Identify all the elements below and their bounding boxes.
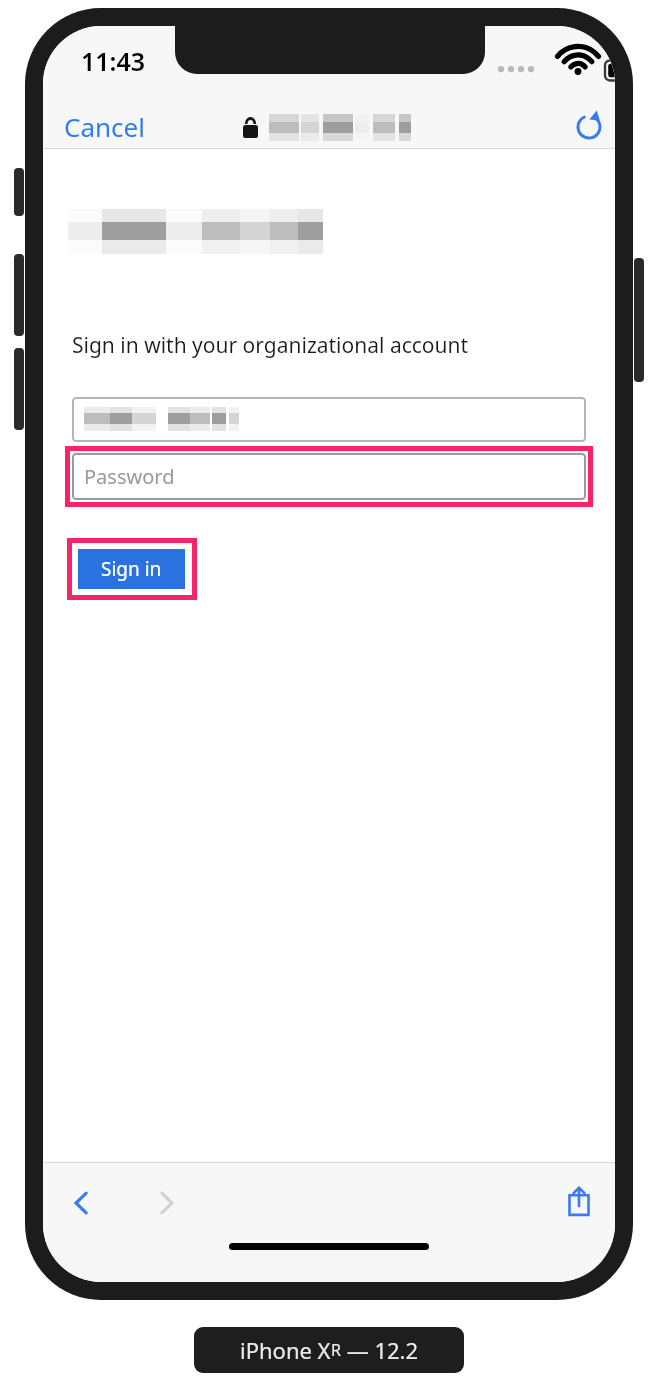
button[interactable]: Back [55,1176,109,1230]
staticText: Sign in with your organizational account [72,331,469,360]
button[interactable]: Share [551,1174,607,1230]
staticText: — 12.2 [341,1335,419,1365]
staticText: iPhone X [240,1335,331,1365]
button[interactable]: Sign in [78,549,185,589]
staticText: Password [84,463,175,490]
staticText: Sign in [101,556,162,582]
staticText: Cancel [64,109,145,144]
button[interactable]: Forward [139,1176,193,1230]
button[interactable]: Password [72,453,586,500]
staticText: 11:43 [81,44,146,78]
staticText: R [331,1339,341,1361]
button[interactable]: Reload [567,104,611,148]
button[interactable] [72,397,586,442]
button[interactable]: Cancel [49,104,159,148]
